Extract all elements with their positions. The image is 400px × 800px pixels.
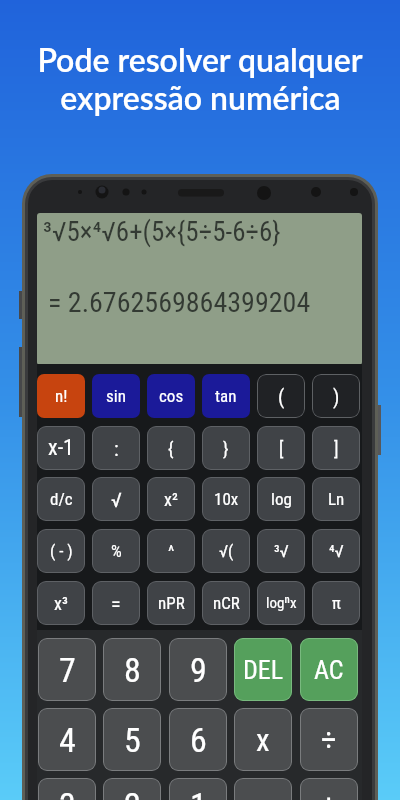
staticText: log — [271, 489, 292, 509]
staticText: % — [111, 541, 122, 561]
button[interactable]: logⁿx — [257, 581, 305, 625]
button[interactable]: DEL — [234, 638, 292, 701]
button[interactable]: tan — [202, 374, 250, 418]
button[interactable]: ÷ — [300, 708, 358, 771]
staticText: = — [111, 592, 121, 615]
button[interactable]: [ — [257, 426, 305, 470]
staticText: 4 — [59, 720, 76, 760]
button[interactable]: : — [92, 426, 140, 470]
button[interactable]: ³√ — [257, 529, 305, 573]
staticText: nCR — [213, 593, 240, 613]
button[interactable]: nPR — [147, 581, 195, 625]
staticText: ( — [278, 385, 285, 408]
button[interactable]: % — [92, 529, 140, 573]
button[interactable]: 7 — [38, 638, 96, 701]
staticText: nPR — [158, 593, 185, 613]
staticText: 9 — [190, 650, 207, 690]
staticText: ] — [334, 438, 339, 459]
staticText: [ — [279, 438, 284, 459]
staticText: : — [114, 437, 119, 460]
button[interactable]: nCR — [202, 581, 250, 625]
staticText: d/c — [50, 489, 73, 509]
button[interactable]: log — [257, 477, 305, 521]
button[interactable]: x-1 — [37, 426, 85, 470]
button[interactable]: 1 — [169, 778, 227, 800]
button[interactable]: 3 — [38, 778, 96, 800]
button[interactable]: x³ — [37, 581, 85, 625]
staticText: √ — [111, 488, 122, 511]
staticText: 5 — [124, 720, 141, 760]
button[interactable]: 6 — [169, 708, 227, 771]
staticText: x-1 — [48, 435, 74, 461]
button[interactable]: √( — [202, 529, 250, 573]
staticText: 1 — [190, 785, 207, 800]
staticText: n! — [55, 386, 68, 406]
button[interactable]: cos — [147, 374, 195, 418]
staticText: { — [168, 438, 174, 459]
staticText: tan — [215, 386, 237, 406]
staticText: + — [321, 787, 337, 800]
staticText: ) — [333, 385, 340, 408]
button[interactable]: x — [234, 708, 292, 771]
button[interactable]: Ln — [312, 477, 360, 521]
staticText: ^ — [168, 541, 175, 561]
staticText: AC — [314, 655, 344, 685]
staticText: = 2.6762569864399204 — [48, 286, 311, 319]
button[interactable]: √ — [92, 477, 140, 521]
staticText: sin — [106, 386, 126, 406]
staticText: } — [223, 438, 229, 459]
staticText: 2 — [124, 785, 141, 800]
staticText: ⁴√ — [329, 541, 344, 561]
staticText: 10x — [214, 489, 239, 509]
staticText: logⁿx — [266, 594, 297, 612]
button[interactable]: ( — [257, 374, 305, 418]
button[interactable]: 4 — [38, 708, 96, 771]
staticText: 3 — [59, 785, 76, 800]
button[interactable]: { — [147, 426, 195, 470]
button[interactable]: − — [234, 778, 292, 800]
button[interactable]: AC — [300, 638, 358, 701]
staticText: Pode resolver qualquer — [37, 40, 363, 78]
button[interactable]: x² — [147, 477, 195, 521]
staticText: 8 — [124, 650, 141, 690]
staticText: Ln — [328, 489, 345, 509]
button[interactable]: π — [312, 581, 360, 625]
button[interactable]: + — [300, 778, 358, 800]
staticText: expressão numérica — [60, 78, 341, 116]
button[interactable]: 9 — [169, 638, 227, 701]
button[interactable]: ⁴√ — [312, 529, 360, 573]
button[interactable]: 5 — [103, 708, 161, 771]
staticText: π — [332, 593, 341, 613]
button[interactable]: sin — [92, 374, 140, 418]
button[interactable]: = — [92, 581, 140, 625]
button[interactable]: ( - ) — [37, 529, 85, 573]
staticText: x — [256, 722, 270, 758]
staticText: x³ — [54, 593, 68, 614]
staticText: DEL — [243, 655, 284, 685]
staticText: ( - ) — [50, 541, 73, 561]
button[interactable]: ^ — [147, 529, 195, 573]
button[interactable]: 2 — [103, 778, 161, 800]
button[interactable]: 10x — [202, 477, 250, 521]
staticText: cos — [159, 386, 184, 406]
staticText: ³√5×⁴√6+(5×{5÷5-6÷6} — [43, 216, 281, 248]
staticText: x² — [164, 489, 178, 510]
button[interactable]: } — [202, 426, 250, 470]
staticText: 7 — [59, 650, 76, 690]
staticText: ³√ — [274, 541, 289, 561]
staticText: √( — [219, 541, 234, 561]
staticText: ÷ — [321, 722, 337, 758]
button[interactable]: 8 — [103, 638, 161, 701]
staticText: 6 — [190, 720, 207, 760]
button[interactable]: ) — [312, 374, 360, 418]
button[interactable]: ] — [312, 426, 360, 470]
button[interactable]: n! — [37, 374, 85, 418]
button[interactable]: d/c — [37, 477, 85, 521]
